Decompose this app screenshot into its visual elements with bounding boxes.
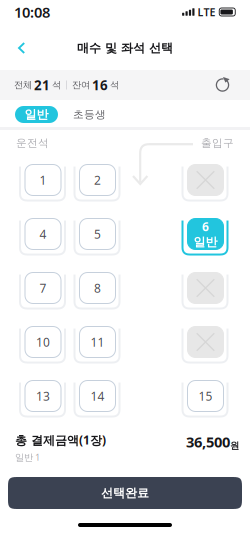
staticText: LTE	[197, 5, 215, 19]
staticText: 16	[92, 76, 108, 94]
staticText: 5	[94, 226, 101, 242]
button[interactable]: Seat 1	[0, 0, 250, 540]
staticText: 석	[110, 79, 119, 91]
staticText: 7	[39, 280, 46, 296]
button[interactable]: Back	[6, 33, 38, 63]
button[interactable]: 초등생	[73, 106, 106, 123]
staticText: 8	[94, 280, 101, 296]
staticText: 일반	[193, 235, 217, 249]
staticText: 출입구	[201, 136, 234, 149]
staticText: 매수 및 좌석 선택	[77, 41, 173, 55]
staticText: 원	[230, 440, 239, 451]
button[interactable]: Refresh	[210, 72, 236, 98]
staticText: 1	[39, 172, 46, 188]
staticText: 13	[36, 388, 50, 404]
button[interactable]: Seat 9	[0, 0, 250, 540]
button[interactable]: Seat 8	[0, 0, 250, 540]
staticText: 잔여	[72, 79, 90, 91]
staticText: 36,500	[186, 432, 230, 451]
staticText: 석	[52, 79, 61, 91]
staticText: 전체	[14, 79, 32, 91]
staticText: 15	[198, 388, 212, 404]
staticText: 초등생	[73, 108, 106, 121]
button[interactable]: Seat 12	[0, 0, 250, 540]
staticText: 6	[202, 219, 209, 235]
button[interactable]: Seat 13	[0, 0, 250, 540]
staticText: 2	[94, 172, 101, 188]
staticText: 운전석	[16, 136, 49, 149]
button[interactable]: Seat 11	[0, 0, 250, 540]
staticText: 일반 1	[15, 451, 40, 463]
staticText: 11	[90, 334, 104, 350]
button[interactable]: Seat 5	[0, 0, 250, 540]
button[interactable]: Seat 3	[0, 0, 250, 540]
button[interactable]: Seat 6	[0, 0, 250, 540]
button[interactable]: Seat 7	[0, 0, 250, 540]
button[interactable]: Seat 15	[0, 0, 250, 540]
button[interactable]: Seat 2	[0, 0, 250, 540]
button[interactable]: 선택완료	[8, 477, 242, 509]
button[interactable]: Seat 4	[0, 0, 250, 540]
staticText: 선택완료	[101, 486, 149, 500]
button[interactable]: Seat 14	[0, 0, 250, 540]
staticText: 14	[90, 388, 104, 404]
button[interactable]: 일반	[15, 106, 58, 123]
button[interactable]: Seat 10	[0, 0, 250, 540]
staticText: 10:08	[14, 2, 50, 22]
staticText: 21	[34, 76, 50, 94]
staticText: 4	[39, 226, 46, 242]
staticText: 총 결제금액(1장)	[15, 432, 106, 448]
staticText: 일반	[24, 107, 48, 122]
staticText: 10	[36, 334, 50, 350]
